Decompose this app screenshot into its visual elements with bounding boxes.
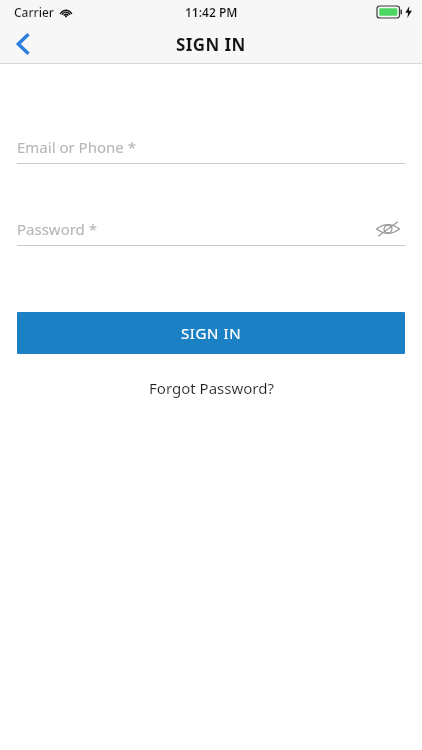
button[interactable]: Forgot Password? [135,373,288,403]
staticText: Forgot Password? [149,378,274,398]
staticText: 11:42 PM [185,4,238,20]
staticText: SIGN IN [181,323,242,343]
staticText: SIGN IN [176,33,246,56]
staticText: Password * [17,219,98,239]
button[interactable]: Password * [17,212,405,246]
button[interactable]: Back [0,24,46,64]
button[interactable]: SIGN IN [17,312,405,354]
button[interactable]: Show password [371,215,405,243]
button[interactable]: Email or Phone * [17,130,405,164]
staticText: Email or Phone * [17,137,136,157]
staticText: Carrier [14,4,54,20]
